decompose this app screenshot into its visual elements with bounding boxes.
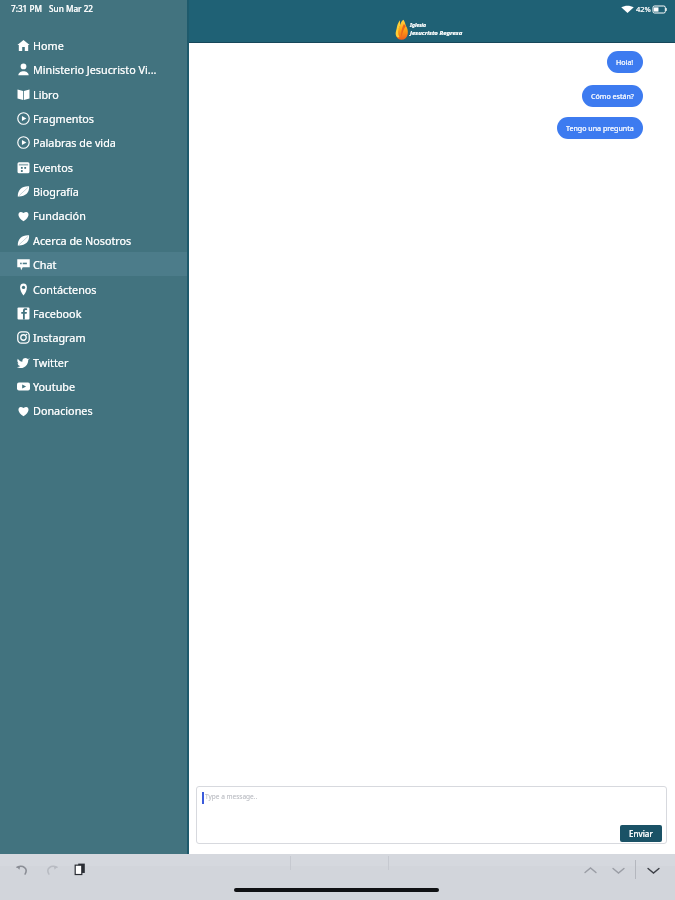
staticText: Sun Mar 22 [49, 3, 94, 14]
staticText: Contáctenos [33, 282, 97, 297]
button[interactable]: Palabras de vida [0, 130, 189, 154]
button[interactable]: Hola! [607, 51, 643, 73]
button[interactable]: Facebook [0, 301, 189, 325]
staticText: Donaciones [33, 403, 93, 418]
staticText: Type a message.. [205, 792, 258, 801]
button[interactable]: Previous [581, 861, 599, 879]
staticText: Twitter [33, 355, 69, 370]
staticText: Acerca de Nosotros [33, 233, 132, 248]
staticText: 7:31 PM [11, 3, 42, 14]
button[interactable]: Undo [13, 860, 31, 878]
button[interactable]: Clipboard [71, 860, 89, 878]
staticText: Facebook [33, 306, 82, 321]
staticText: Youtube [33, 379, 76, 394]
staticText: 42% [636, 4, 651, 14]
staticText: Iglesia [410, 22, 427, 29]
button[interactable]: Ministerio Jesucristo Vi... [0, 57, 189, 81]
button[interactable]: Eventos [0, 155, 189, 179]
staticText: Biografía [33, 184, 79, 199]
staticText: Eventos [33, 160, 73, 175]
button[interactable]: Next [609, 861, 627, 879]
staticText: Fragmentos [33, 111, 95, 126]
staticText: Palabras de vida [33, 135, 116, 150]
button[interactable]: Chat [0, 252, 189, 276]
staticText: Enviar [629, 828, 653, 839]
staticText: Cómo están? [591, 91, 634, 101]
button[interactable]: Libro [0, 82, 189, 106]
button[interactable]: Contáctenos [0, 277, 189, 301]
button[interactable]: Acerca de Nosotros [0, 228, 189, 252]
button[interactable]: Biografía [0, 179, 189, 203]
staticText: Hola! [616, 57, 634, 67]
button[interactable]: Twitter [0, 350, 189, 374]
button[interactable]: Fundación [0, 203, 189, 227]
staticText: Chat [33, 257, 57, 272]
button[interactable]: Home [0, 33, 189, 57]
staticText: Jesucristo Regresa [410, 29, 463, 37]
staticText: Libro [33, 87, 59, 102]
button[interactable]: Instagram [0, 325, 189, 349]
staticText: Fundación [33, 208, 86, 223]
button[interactable]: Redo [42, 860, 60, 878]
button[interactable]: Donaciones [0, 398, 189, 422]
button[interactable]: Tengo una pregunta [557, 117, 643, 139]
button[interactable]: Hide keyboard [644, 861, 662, 879]
staticText: Instagram [33, 330, 86, 345]
button[interactable]: Youtube [0, 374, 189, 398]
button[interactable]: Cómo están? [582, 85, 643, 107]
staticText: Ministerio Jesucristo Vi... [33, 62, 157, 77]
button[interactable]: Enviar [620, 825, 662, 842]
button[interactable]: Type a message.. [196, 786, 667, 844]
staticText: Home [33, 38, 64, 53]
button[interactable]: Fragmentos [0, 106, 189, 130]
staticText: Tengo una pregunta [566, 123, 634, 133]
